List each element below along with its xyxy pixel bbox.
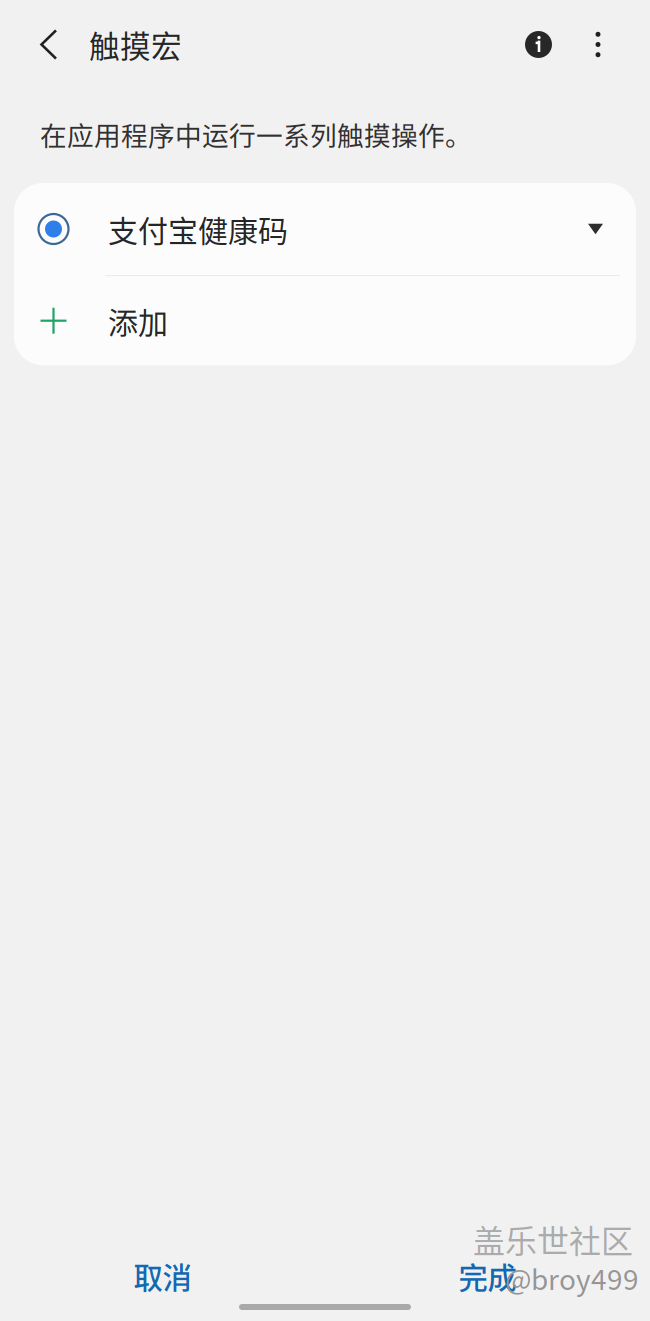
button[interactable]: 完成 <box>325 1248 650 1304</box>
button[interactable]: 添加 <box>14 276 636 365</box>
button[interactable]: 取消 <box>0 1248 325 1304</box>
staticText: 在应用程序中运行一系列触摸操作。 <box>40 115 472 153</box>
staticText: 取消 <box>133 1255 191 1297</box>
button[interactable]: Information <box>507 13 570 75</box>
button[interactable]: More options <box>570 13 626 75</box>
staticText: 支付宝健康码 <box>108 207 288 251</box>
staticText: 完成 <box>458 1255 516 1297</box>
staticText: 盖乐世社区 <box>473 1216 633 1262</box>
staticText: @broy499 <box>505 1257 639 1298</box>
staticText: 添加 <box>108 299 168 342</box>
staticText: 触摸宏 <box>89 22 182 67</box>
button[interactable]: 支付宝健康码 <box>14 183 636 275</box>
button[interactable]: Back <box>23 13 75 75</box>
